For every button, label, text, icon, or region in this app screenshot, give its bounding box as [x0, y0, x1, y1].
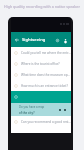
button[interactable]: Record	[62, 107, 67, 112]
staticText: Where is the tourist office?	[21, 62, 60, 66]
button[interactable]: Where is the tourist office?	[11, 58, 71, 69]
staticText: Do you have a map	[19, 105, 45, 109]
staticText: Can you recommend a good restaurant?	[21, 120, 71, 124]
button[interactable]: Back	[13, 36, 20, 43]
button[interactable]	[11, 91, 71, 103]
staticText: How much is an entrance ticket?	[21, 84, 68, 88]
button[interactable]: Can you recommend a good restaurant?	[11, 116, 71, 127]
button[interactable]: Could you tell me where the entrance is?	[11, 47, 71, 58]
button[interactable]: Play	[57, 107, 62, 112]
staticText: High quality recording with a native spe…	[4, 4, 80, 9]
staticText: Could you tell me where the entrance is?	[21, 51, 71, 55]
staticText: What time does the museum open?	[21, 73, 71, 77]
button[interactable]: What time does the museum open?	[11, 69, 71, 80]
button[interactable]: How much is an entrance ticket?	[11, 80, 71, 91]
staticText: of the city?	[19, 111, 35, 115]
button[interactable]: Bookmark	[53, 36, 61, 44]
staticText: Sightseeing	[22, 37, 46, 43]
button[interactable]: Profile	[61, 36, 69, 44]
